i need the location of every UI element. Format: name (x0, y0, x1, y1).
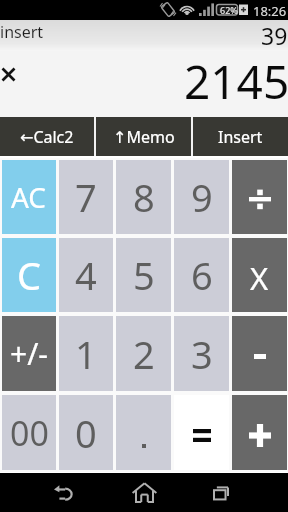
staticText: +/- (10, 333, 48, 374)
staticText: Insert (218, 126, 263, 148)
button[interactable]: Back (40, 473, 86, 512)
staticText: 4 (75, 249, 97, 301)
button[interactable]: Home (121, 473, 167, 512)
staticText: AC (11, 178, 47, 216)
staticText: 5 (133, 249, 155, 301)
staticText: insert (0, 21, 44, 43)
button[interactable]: 7 (59, 160, 113, 234)
button[interactable]: 3 (174, 316, 229, 391)
button[interactable]: 00 (2, 395, 56, 470)
button[interactable]: 1 (59, 316, 113, 391)
button[interactable]: Decimal point (116, 395, 171, 470)
staticText: 9 (191, 171, 213, 223)
button[interactable]: 4 (59, 238, 113, 312)
button[interactable]: Insert (193, 117, 288, 156)
button[interactable]: 8 (116, 160, 171, 234)
button[interactable]: Plus (232, 395, 287, 470)
staticText: 6 (191, 249, 213, 301)
staticText: 62% (220, 4, 238, 16)
staticText: 0 (75, 407, 97, 459)
button[interactable]: 0 (59, 395, 113, 470)
button[interactable]: ↑Memo (96, 117, 191, 156)
staticText: ←Calc2 (20, 126, 74, 148)
button[interactable]: 5 (116, 238, 171, 312)
staticText: 1 (75, 328, 97, 380)
staticText: 00 (10, 410, 49, 456)
button[interactable]: Minus (232, 316, 287, 391)
staticText: C (17, 249, 42, 301)
button[interactable]: ←Calc2 (0, 117, 94, 156)
staticText: ↑Memo (113, 126, 175, 148)
button[interactable]: X (232, 238, 287, 312)
staticText: 18:26 (253, 2, 287, 20)
button[interactable]: +/- (2, 316, 56, 391)
staticText: 2 (133, 328, 155, 380)
staticText: 39 (261, 20, 288, 51)
staticText: 7 (75, 171, 97, 223)
button[interactable]: 2 (116, 316, 171, 391)
button[interactable]: Divide (232, 160, 287, 234)
staticText: 3 (191, 328, 213, 380)
button[interactable]: Recent apps (198, 473, 244, 512)
button[interactable]: Equals (174, 395, 229, 470)
staticText: 8 (133, 171, 155, 223)
button[interactable]: 6 (174, 238, 229, 312)
button[interactable]: 9 (174, 160, 229, 234)
staticText: X (250, 257, 269, 299)
button[interactable]: C (2, 238, 56, 312)
staticText: 2145 (184, 50, 288, 113)
button[interactable]: AC (2, 160, 56, 234)
